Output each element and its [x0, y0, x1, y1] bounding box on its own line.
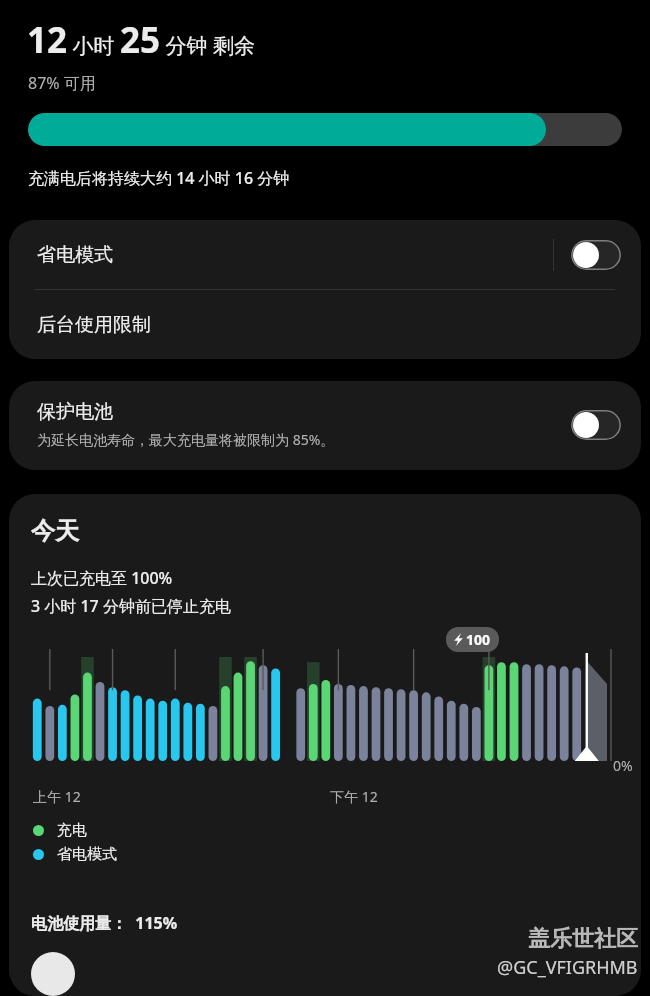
staticText: 87% 可用 — [28, 72, 96, 94]
staticText: 保护电池 — [37, 400, 113, 424]
staticText: 100 — [466, 630, 491, 649]
button[interactable]: 省电模式 — [33, 845, 117, 864]
staticText: 电池使用量： 115% — [31, 912, 178, 934]
staticText: 3 小时 17 分钟前已停止充电 — [31, 595, 231, 617]
button[interactable]: 后台使用限制 — [9, 290, 641, 359]
button[interactable]: 保护电池 — [571, 410, 621, 440]
staticText: 下午 12 — [330, 787, 378, 806]
staticText: 上次已充电至 100% — [31, 567, 173, 589]
staticText: 上午 12 — [33, 787, 81, 806]
staticText: 0% — [613, 756, 633, 775]
staticText: 盖乐世社区 — [528, 925, 638, 953]
button[interactable]: 保护电池 — [9, 381, 641, 470]
button[interactable]: 省电模式 — [9, 220, 641, 289]
staticText: 12 小时 25 分钟 剩余 — [27, 16, 255, 64]
staticText: 今天 — [31, 516, 79, 546]
staticText: 省电模式 — [57, 845, 117, 864]
staticText: @GC_VFIGRHMB — [497, 955, 638, 980]
staticText: 充满电后将持续大约 14 小时 16 分钟 — [28, 167, 290, 189]
staticText: 充电 — [57, 821, 87, 840]
staticText: 为延长电池寿命，最大充电量将被限制为 85%。 — [37, 430, 335, 449]
staticText: 省电模式 — [37, 243, 553, 267]
button[interactable]: 充电 — [33, 821, 87, 840]
staticText: 后台使用限制 — [37, 313, 151, 337]
button[interactable]: 省电模式 — [571, 240, 621, 270]
